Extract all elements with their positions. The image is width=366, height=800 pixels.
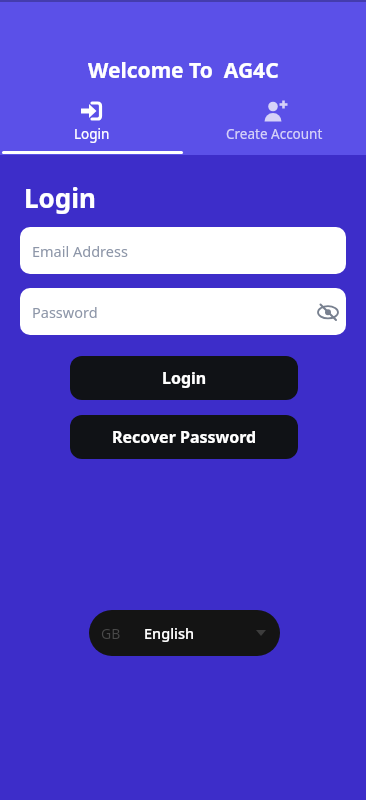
staticText: English	[144, 623, 195, 643]
staticText: Login	[162, 367, 207, 389]
staticText: Welcome To AG4C	[88, 56, 279, 85]
staticText: Email Address	[32, 241, 128, 261]
staticText: Login	[24, 180, 96, 215]
staticText: GB	[101, 624, 121, 643]
button[interactable]: Login	[0, 100, 183, 143]
button[interactable]: Create Account	[183, 100, 366, 143]
staticText: Password	[32, 302, 98, 322]
button[interactable]: Login	[70, 356, 298, 400]
button[interactable]: Email Address	[20, 227, 346, 274]
button[interactable]: Recover Password	[70, 415, 298, 459]
button[interactable]: Password	[20, 288, 346, 335]
staticText: Create Account	[226, 125, 323, 143]
button[interactable]: GB	[89, 610, 280, 656]
staticText: Login	[74, 125, 110, 143]
staticText: Recover Password	[112, 426, 257, 448]
